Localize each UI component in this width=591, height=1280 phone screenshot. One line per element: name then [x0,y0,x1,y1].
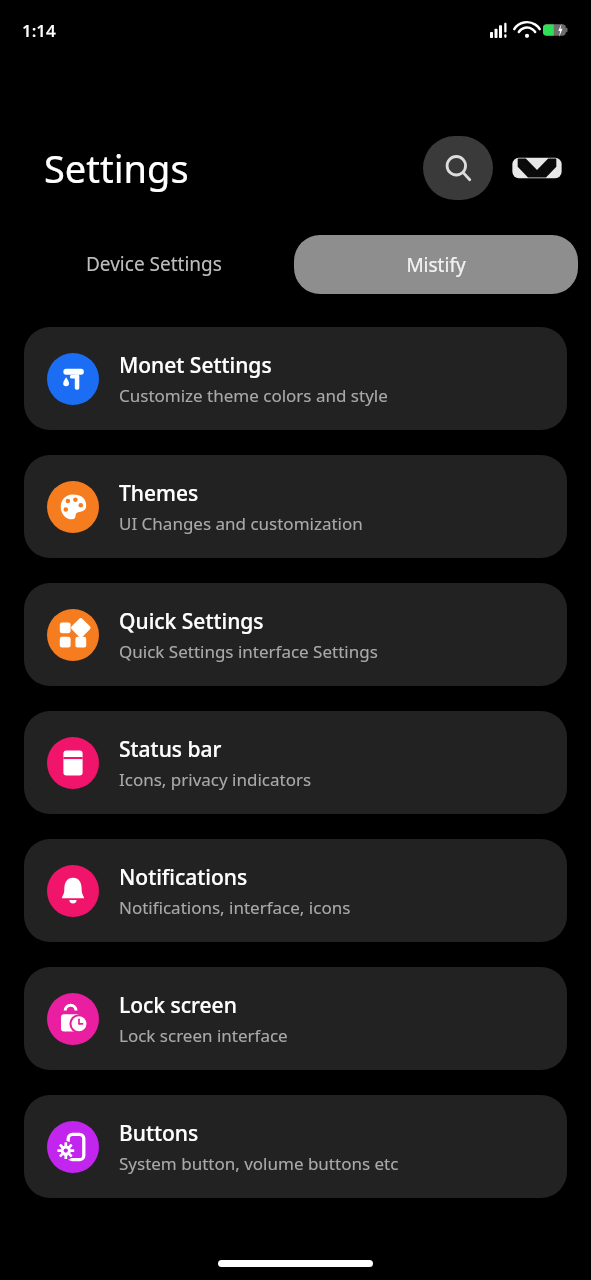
button[interactable]: Notifications [24,839,567,942]
staticText: Settings [44,142,189,194]
button[interactable]: Mistify [294,235,578,294]
staticText: 1:14 [22,19,56,42]
staticText: Quick Settings [119,607,264,636]
button[interactable]: Quick Settings [24,583,567,686]
button[interactable]: Lock screen [24,967,567,1070]
staticText: System button, volume buttons etc [119,1152,399,1175]
staticText: Notifications, interface, icons [119,896,351,919]
staticText: UI Changes and customization [119,512,363,535]
staticText: Monet Settings [119,351,272,380]
staticText: Themes [119,479,199,508]
button[interactable]: Monet Settings [24,327,567,430]
button[interactable]: Themes [24,455,567,558]
staticText: Lock screen [119,991,237,1020]
button[interactable]: Status bar [24,711,567,814]
button[interactable]: Buttons [24,1095,567,1198]
staticText: Quick Settings interface Settings [119,640,378,663]
staticText: Mistify [406,252,466,278]
staticText: Status bar [119,735,222,764]
staticText: Lock screen interface [119,1024,288,1047]
staticText: Icons, privacy indicators [119,768,312,791]
staticText: Notifications [119,863,248,892]
button[interactable]: App logo [507,145,567,191]
button[interactable]: Search [423,136,493,200]
staticText: Customize theme colors and style [119,384,388,407]
button[interactable]: Device Settings [24,234,284,294]
staticText: Buttons [119,1119,199,1148]
staticText: Device Settings [86,251,222,277]
